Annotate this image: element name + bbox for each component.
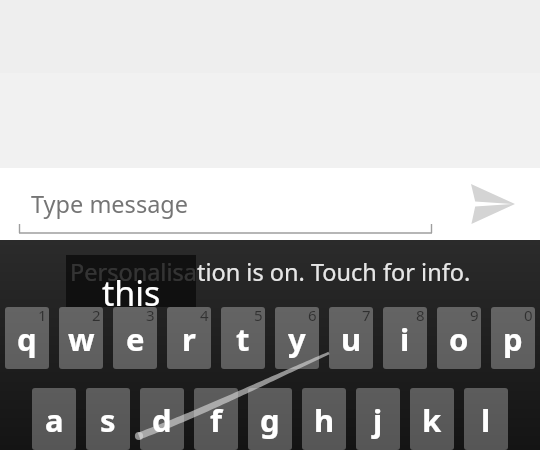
staticText: s: [100, 399, 116, 441]
button[interactable]: Send: [457, 168, 529, 240]
button[interactable]: Type message: [10, 174, 440, 232]
staticText: h: [314, 399, 335, 441]
button[interactable]: [302, 388, 346, 450]
staticText: 2: [92, 307, 101, 325]
staticText: 5: [254, 307, 263, 325]
button[interactable]: 4: [167, 307, 211, 369]
button[interactable]: 5: [221, 307, 265, 369]
button[interactable]: 6: [275, 307, 319, 369]
staticText: i: [400, 318, 410, 360]
staticText: t: [236, 318, 250, 360]
staticText: 0: [524, 307, 533, 325]
staticText: q: [17, 318, 37, 360]
button[interactable]: 0: [491, 307, 535, 369]
staticText: d: [152, 399, 172, 441]
staticText: 7: [362, 307, 371, 325]
staticText: e: [126, 318, 145, 360]
staticText: w: [68, 318, 95, 360]
staticText: y: [288, 318, 306, 360]
staticText: Personalisation is on. Touch for info.: [70, 256, 471, 288]
staticText: a: [45, 399, 64, 441]
staticText: 3: [146, 307, 155, 325]
staticText: 4: [200, 307, 209, 325]
staticText: 8: [416, 307, 425, 325]
button[interactable]: [464, 388, 508, 450]
button[interactable]: [356, 388, 400, 450]
button[interactable]: 7: [329, 307, 373, 369]
button[interactable]: 2: [59, 307, 103, 369]
button[interactable]: [410, 388, 454, 450]
button[interactable]: [194, 388, 238, 450]
button[interactable]: 1: [5, 307, 49, 369]
button[interactable]: [86, 388, 130, 450]
staticText: g: [260, 399, 280, 441]
button[interactable]: [140, 388, 184, 450]
staticText: 6: [308, 307, 317, 325]
staticText: Type message: [31, 188, 189, 220]
staticText: j: [373, 399, 383, 441]
staticText: u: [341, 318, 362, 360]
button[interactable]: 8: [383, 307, 427, 369]
staticText: o: [449, 318, 469, 360]
staticText: r: [182, 318, 196, 360]
button[interactable]: Personalisation is on. Touch for info.: [0, 256, 540, 304]
staticText: this: [102, 270, 161, 316]
staticText: l: [481, 399, 491, 441]
staticText: p: [503, 318, 523, 360]
button[interactable]: 9: [437, 307, 481, 369]
staticText: 1: [38, 307, 47, 325]
staticText: f: [210, 399, 222, 441]
button[interactable]: 3: [113, 307, 157, 369]
button[interactable]: [248, 388, 292, 450]
staticText: k: [422, 399, 442, 441]
button[interactable]: [32, 388, 76, 450]
staticText: 9: [470, 307, 479, 325]
